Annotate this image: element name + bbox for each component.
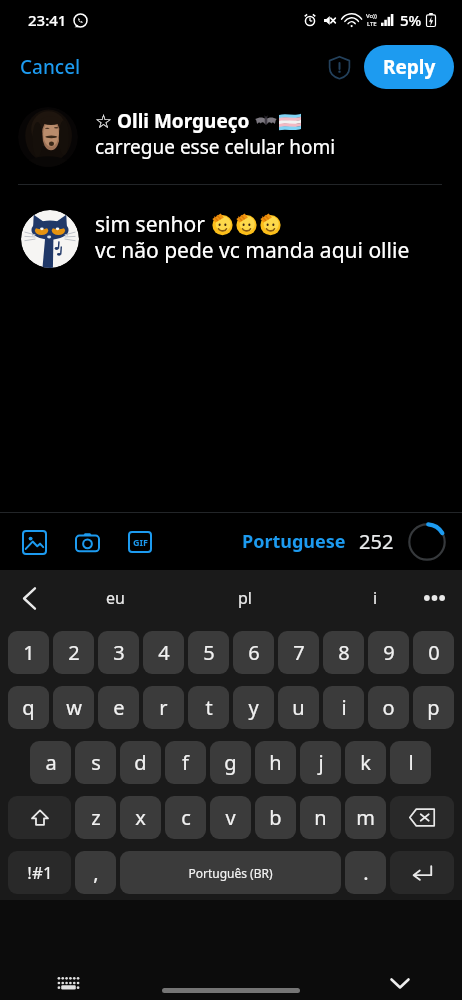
staticText: i <box>373 587 378 609</box>
button[interactable]: 2 <box>53 631 94 674</box>
button[interactable]: v <box>210 796 251 839</box>
button[interactable]: Backspace <box>390 796 454 839</box>
staticText: 5% <box>400 10 422 30</box>
button[interactable]: More options <box>414 578 454 618</box>
staticText: pl <box>238 587 252 609</box>
button[interactable]: Switch keyboard <box>50 965 86 1000</box>
staticText: y <box>248 694 259 721</box>
staticText: 1 <box>23 639 35 666</box>
staticText: eu <box>106 587 125 609</box>
button[interactable]: x <box>120 796 161 839</box>
button[interactable]: d <box>120 741 161 784</box>
button[interactable]: u <box>278 686 319 729</box>
button[interactable]: Previous suggestions <box>9 578 49 618</box>
button[interactable]: Cancel <box>8 46 93 88</box>
staticText: Portuguese <box>242 529 346 554</box>
button[interactable]: i <box>323 686 364 729</box>
staticText: t <box>205 694 213 721</box>
button[interactable]: e <box>98 686 139 729</box>
button[interactable]: !#1 <box>8 851 71 894</box>
staticText: a <box>45 749 57 776</box>
button[interactable]: n <box>300 796 341 839</box>
button[interactable]: 0 <box>413 631 454 674</box>
staticText: e <box>113 694 125 721</box>
button[interactable]: c <box>165 796 206 839</box>
staticText: Cancel <box>20 54 81 80</box>
button[interactable]: eu <box>50 576 180 620</box>
button[interactable]: Camera <box>64 519 110 565</box>
staticText: i <box>341 694 347 721</box>
button[interactable]: m <box>345 796 386 839</box>
button[interactable]: Who can reply <box>319 47 359 87</box>
staticText: . <box>363 859 369 886</box>
button[interactable]: f <box>165 741 206 784</box>
staticText: 23:41 <box>28 10 67 30</box>
staticText: !#1 <box>27 861 53 884</box>
staticText: carregue esse celular homi <box>95 134 336 160</box>
button[interactable]: j <box>300 741 341 784</box>
staticText: c <box>181 804 191 831</box>
staticText: z <box>91 804 101 831</box>
button[interactable]: b <box>255 796 296 839</box>
staticText: f <box>182 749 189 776</box>
staticText: 7 <box>293 639 305 666</box>
button[interactable]: 8 <box>323 631 364 674</box>
button[interactable]: Add photo <box>11 519 57 565</box>
button[interactable]: g <box>210 741 251 784</box>
button[interactable]: Português (BR) <box>120 851 341 894</box>
button[interactable]: w <box>53 686 94 729</box>
staticText: vc não pede vc manda aqui ollie <box>95 236 410 265</box>
button[interactable]: 6 <box>233 631 274 674</box>
button[interactable]: r <box>143 686 184 729</box>
button[interactable]: z <box>75 796 116 839</box>
button[interactable]: 9 <box>368 631 409 674</box>
staticText: GIF <box>133 536 148 548</box>
staticText: 8 <box>338 639 350 666</box>
staticText: h <box>269 749 282 776</box>
button[interactable]: . <box>345 851 386 894</box>
staticText: 3 <box>113 639 125 666</box>
staticText: b <box>269 804 282 831</box>
button[interactable]: Portuguese <box>240 525 348 558</box>
button[interactable]: h <box>255 741 296 784</box>
button[interactable]: i <box>310 576 440 620</box>
button[interactable]: , <box>75 851 116 894</box>
staticText: j <box>318 749 324 776</box>
button[interactable]: k <box>345 741 386 784</box>
staticText: Português (BR) <box>188 865 273 881</box>
button[interactable]: a <box>30 741 71 784</box>
button[interactable]: 4 <box>143 631 184 674</box>
button[interactable]: Enter <box>390 851 454 894</box>
staticText: 5 <box>203 639 215 666</box>
button[interactable]: pl <box>180 576 310 620</box>
button[interactable]: Shift <box>8 796 71 839</box>
staticText: 2 <box>68 639 80 666</box>
staticText: Vo)) <box>366 12 377 20</box>
button[interactable]: o <box>368 686 409 729</box>
button[interactable]: p <box>413 686 454 729</box>
staticText: 6 <box>248 639 260 666</box>
staticText: o <box>382 694 395 721</box>
staticText: k <box>360 749 371 776</box>
staticText: sim senhor <box>95 210 211 236</box>
button[interactable]: 3 <box>98 631 139 674</box>
staticText: v <box>225 804 236 831</box>
button[interactable]: l <box>390 741 431 784</box>
button[interactable]: Hide keyboard <box>382 965 418 1000</box>
button[interactable]: t <box>188 686 229 729</box>
button[interactable]: q <box>8 686 49 729</box>
button[interactable]: y <box>233 686 274 729</box>
staticText: d <box>134 749 147 776</box>
button[interactable]: 5 <box>188 631 229 674</box>
staticText: , <box>93 859 99 886</box>
button[interactable]: Reply <box>364 45 454 89</box>
button[interactable]: s <box>75 741 116 784</box>
button[interactable]: Add GIF <box>117 519 163 565</box>
staticText: s <box>91 749 101 776</box>
button[interactable]: 1 <box>8 631 49 674</box>
staticText: LTE <box>367 20 377 28</box>
button[interactable]: 7 <box>278 631 319 674</box>
staticText: x <box>135 804 146 831</box>
staticText: 4 <box>158 639 170 666</box>
staticText: n <box>314 804 327 831</box>
